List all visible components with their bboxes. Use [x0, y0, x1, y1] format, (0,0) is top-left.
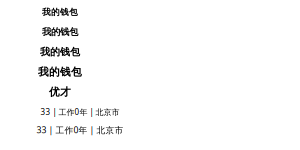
staticText: 我的钱包	[42, 26, 78, 38]
staticText: 33 | 工作0年 | 北京市	[36, 124, 123, 136]
staticText: 我的钱包	[38, 65, 82, 79]
staticText: 优才	[49, 85, 71, 99]
staticText: 33 | 工作0年 | 北京市	[40, 107, 119, 117]
staticText: 我的钱包	[42, 6, 78, 17]
staticText: 我的钱包	[40, 46, 80, 58]
